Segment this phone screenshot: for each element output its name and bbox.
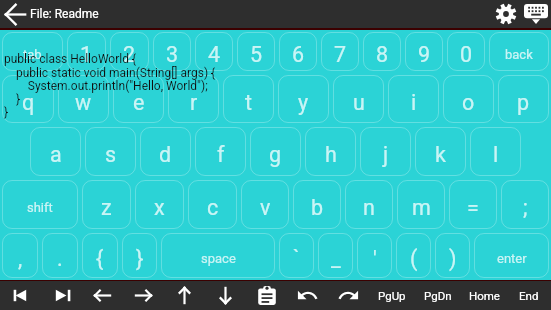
- staticText: c: [207, 195, 219, 220]
- staticText: space: [201, 251, 236, 266]
- button[interactable]: Up: [164, 281, 205, 310]
- button[interactable]: =: [449, 180, 497, 229]
- button[interactable]: 5: [237, 32, 275, 71]
- button[interactable]: d: [140, 127, 191, 176]
- button[interactable]: PgDn: [415, 281, 461, 310]
- button[interactable]: x: [135, 180, 184, 229]
- staticText: r: [190, 90, 198, 115]
- button[interactable]: ): [435, 233, 470, 278]
- button[interactable]: space: [161, 233, 275, 278]
- button[interactable]: shift: [2, 180, 78, 229]
- button[interactable]: Down: [205, 281, 246, 310]
- button[interactable]: _: [318, 233, 353, 278]
- button[interactable]: Left: [82, 281, 123, 310]
- staticText: 0: [460, 42, 473, 67]
- button[interactable]: a: [30, 127, 81, 176]
- button[interactable]: `: [279, 233, 314, 278]
- button[interactable]: Hide keyboard: [521, 0, 551, 28]
- staticText: .: [57, 246, 63, 271]
- button[interactable]: ;: [501, 180, 549, 229]
- staticText: h: [325, 142, 337, 167]
- button[interactable]: y: [278, 75, 329, 123]
- button[interactable]: l: [470, 127, 521, 176]
- button[interactable]: z: [82, 180, 131, 229]
- button[interactable]: Undo: [287, 281, 328, 310]
- button[interactable]: ': [357, 233, 392, 278]
- button[interactable]: s: [85, 127, 136, 176]
- button[interactable]: (: [396, 233, 431, 278]
- button[interactable]: u: [333, 75, 384, 123]
- button[interactable]: }: [122, 233, 157, 278]
- staticText: 7: [334, 42, 347, 67]
- button[interactable]: enter: [474, 233, 549, 278]
- button[interactable]: t: [223, 75, 274, 123]
- button[interactable]: End: [507, 281, 551, 310]
- staticText: b: [311, 195, 324, 220]
- button[interactable]: k: [415, 127, 466, 176]
- staticText: PgUp: [378, 289, 406, 302]
- staticText: x: [154, 195, 165, 220]
- staticText: j: [383, 142, 389, 167]
- button[interactable]: f: [195, 127, 246, 176]
- button[interactable]: c: [188, 180, 237, 229]
- button[interactable]: 0: [447, 32, 485, 71]
- staticText: 3: [166, 42, 179, 67]
- staticText: {: [96, 246, 104, 271]
- button[interactable]: Settings: [490, 0, 521, 28]
- button[interactable]: 9: [405, 32, 443, 71]
- button[interactable]: j: [360, 127, 411, 176]
- button[interactable]: 1: [67, 32, 106, 71]
- button[interactable]: Redo: [328, 281, 369, 310]
- button[interactable]: b: [293, 180, 341, 229]
- staticText: 2: [123, 42, 136, 67]
- button[interactable]: .: [42, 233, 78, 278]
- button[interactable]: i: [388, 75, 439, 123]
- button[interactable]: 7: [321, 32, 359, 71]
- button[interactable]: PgUp: [369, 281, 415, 310]
- button[interactable]: o: [443, 75, 494, 123]
- button[interactable]: q: [2, 75, 54, 123]
- button[interactable]: ,: [2, 233, 38, 278]
- staticText: =: [467, 195, 479, 220]
- button[interactable]: e: [113, 75, 164, 123]
- button[interactable]: {: [82, 233, 118, 278]
- button[interactable]: 4: [195, 32, 233, 71]
- button[interactable]: tab: [2, 32, 63, 71]
- staticText: z: [101, 195, 112, 220]
- staticText: End: [519, 289, 539, 302]
- staticText: ,: [18, 246, 23, 271]
- staticText: n: [363, 195, 375, 220]
- button[interactable]: g: [250, 127, 301, 176]
- staticText: enter: [497, 251, 527, 266]
- staticText: 4: [208, 42, 221, 67]
- button[interactable]: w: [58, 75, 109, 123]
- button[interactable]: Back: [0, 0, 30, 28]
- button[interactable]: n: [345, 180, 393, 229]
- button[interactable]: Go to end: [41, 281, 82, 310]
- button[interactable]: Right: [123, 281, 164, 310]
- staticText: g: [269, 142, 282, 167]
- button[interactable]: 2: [110, 32, 149, 71]
- button[interactable]: p: [498, 75, 549, 123]
- staticText: t: [245, 90, 253, 115]
- button[interactable]: h: [305, 127, 356, 176]
- staticText: u: [353, 90, 365, 115]
- staticText: m: [412, 195, 431, 220]
- button[interactable]: r: [168, 75, 219, 123]
- button[interactable]: m: [397, 180, 445, 229]
- staticText: l: [493, 142, 499, 167]
- button[interactable]: back: [489, 32, 549, 71]
- staticText: e: [133, 90, 145, 115]
- button[interactable]: 8: [363, 32, 401, 71]
- button[interactable]: 3: [153, 32, 191, 71]
- staticText: 5: [250, 42, 263, 67]
- staticText: back: [505, 47, 533, 62]
- staticText: q: [22, 90, 35, 115]
- button[interactable]: Home: [461, 281, 507, 310]
- staticText: 6: [292, 42, 305, 67]
- button[interactable]: Go to start: [0, 281, 41, 310]
- button[interactable]: Clipboard: [246, 281, 287, 310]
- button[interactable]: v: [241, 180, 289, 229]
- staticText: 8: [376, 42, 389, 67]
- button[interactable]: 6: [279, 32, 317, 71]
